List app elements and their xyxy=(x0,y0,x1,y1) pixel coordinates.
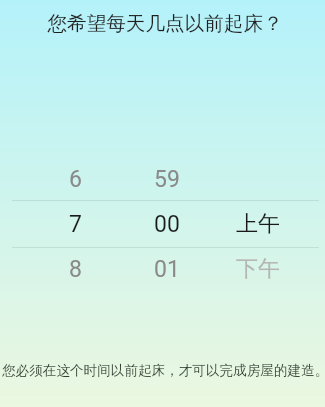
staticText: 下午 xyxy=(236,255,280,283)
staticText: 6 xyxy=(69,166,82,193)
button[interactable]: 00 xyxy=(126,202,207,246)
staticText: 8 xyxy=(69,256,82,283)
staticText: 7 xyxy=(69,211,82,238)
staticText: 59 xyxy=(154,166,180,193)
staticText: 您必须在这个时间以前起床，才可以完成房屋的建造。 xyxy=(2,362,325,379)
button[interactable]: 上午 xyxy=(213,202,302,246)
staticText: 01 xyxy=(154,256,180,283)
button[interactable]: 7 xyxy=(30,202,120,246)
button[interactable]: 59 xyxy=(126,157,207,201)
staticText: 00 xyxy=(154,211,180,238)
staticText: 您希望每天几点以前起床？ xyxy=(47,11,283,36)
button[interactable]: 01 xyxy=(126,247,207,291)
staticText: 上午 xyxy=(236,210,280,238)
button[interactable] xyxy=(213,157,302,201)
button[interactable]: 6 xyxy=(30,157,120,201)
button[interactable]: 下午 xyxy=(213,247,302,291)
button[interactable]: 8 xyxy=(30,247,120,291)
